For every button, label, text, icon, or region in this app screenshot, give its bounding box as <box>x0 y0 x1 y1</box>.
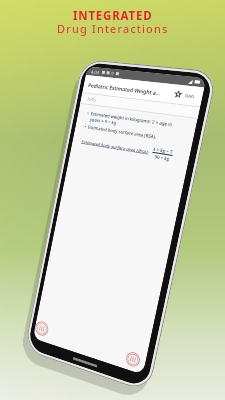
button[interactable]: Pediatric Estimated Weight a... <box>87 75 197 105</box>
staticText: • Estimated weight in kilograms: 2 × age… <box>87 110 173 127</box>
staticText: 0 <box>111 71 115 76</box>
staticText: years + 9 ÷ kg <box>86 115 117 126</box>
staticText: 90 + kg <box>154 153 170 162</box>
staticText: 4 × kg + 7 <box>152 146 174 155</box>
staticText: Info <box>87 96 97 104</box>
staticText: Pediatric Estimated Weight a... <box>88 81 176 98</box>
staticText: Estimated body surface area (BSA): <box>81 138 150 155</box>
staticText: 4:04 <box>90 69 100 75</box>
button[interactable]: Info <box>80 93 200 119</box>
staticText: INTEGRATED <box>73 8 153 24</box>
staticText: • Estimated body surface area (BSA). <box>84 123 157 140</box>
staticText: Drug Interactions <box>57 21 169 36</box>
staticText: FIND <box>185 93 195 99</box>
